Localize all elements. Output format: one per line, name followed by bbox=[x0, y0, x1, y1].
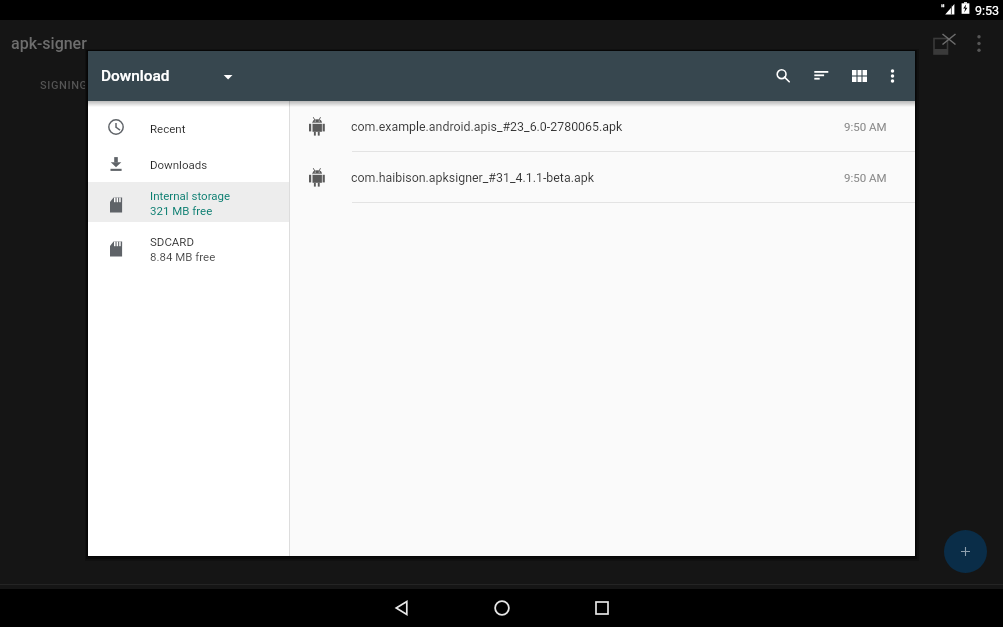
button[interactable]: com.haibison.apksigner_#31_4.1.1-beta.ap… bbox=[290, 152, 915, 203]
button[interactable]: Internal storage bbox=[88, 182, 289, 222]
staticText: 321 MB free bbox=[150, 204, 213, 217]
button[interactable]: Remove bbox=[925, 20, 971, 66]
staticText: 9:50 AM bbox=[844, 171, 887, 184]
staticText: apk-signer bbox=[11, 34, 87, 53]
staticText: SDCARD bbox=[150, 235, 194, 248]
staticText: 9:50 AM bbox=[844, 120, 887, 133]
button[interactable]: Recents bbox=[552, 589, 652, 627]
button[interactable]: More options bbox=[874, 51, 910, 101]
staticText: com.example.android.apis_#23_6.0-2780065… bbox=[351, 119, 623, 134]
button[interactable]: Recent bbox=[88, 110, 289, 146]
staticText: 9:53 bbox=[975, 3, 1000, 18]
button[interactable]: More options bbox=[957, 21, 1001, 65]
button[interactable]: Back bbox=[352, 589, 452, 627]
button[interactable]: Home bbox=[452, 589, 552, 627]
button[interactable]: Sort bbox=[803, 51, 839, 101]
button[interactable]: Add bbox=[944, 530, 987, 573]
button[interactable]: Search bbox=[765, 51, 801, 101]
button[interactable]: Downloads bbox=[88, 146, 289, 182]
button[interactable]: Download bbox=[97, 51, 237, 101]
staticText: SIGNING bbox=[40, 79, 88, 92]
button[interactable]: Grid view bbox=[841, 51, 877, 101]
staticText: Downloads bbox=[150, 158, 208, 171]
staticText: com.haibison.apksigner_#31_4.1.1-beta.ap… bbox=[351, 170, 594, 185]
staticText: Internal storage bbox=[150, 189, 231, 202]
staticText: 8.84 MB free bbox=[150, 250, 216, 263]
staticText: Download bbox=[101, 67, 170, 85]
button[interactable]: com.example.android.apis_#23_6.0-2780065… bbox=[290, 101, 915, 152]
button[interactable]: SDCARD bbox=[88, 222, 289, 266]
staticText: Recent bbox=[150, 122, 186, 135]
